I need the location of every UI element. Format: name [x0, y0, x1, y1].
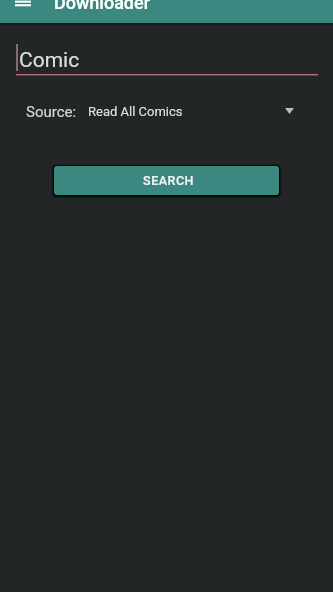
button[interactable]: Read All Comics: [88, 100, 304, 122]
staticText: SEARCH: [143, 173, 194, 188]
staticText: Downloader: [54, 0, 150, 13]
button[interactable]: Open navigation drawer: [15, 0, 31, 7]
staticText: Comic: [19, 48, 80, 73]
staticText: Source:: [26, 103, 77, 121]
staticText: Read All Comics: [88, 104, 183, 119]
button[interactable]: Search query text field: [14, 40, 320, 78]
button[interactable]: SEARCH: [54, 166, 279, 195]
